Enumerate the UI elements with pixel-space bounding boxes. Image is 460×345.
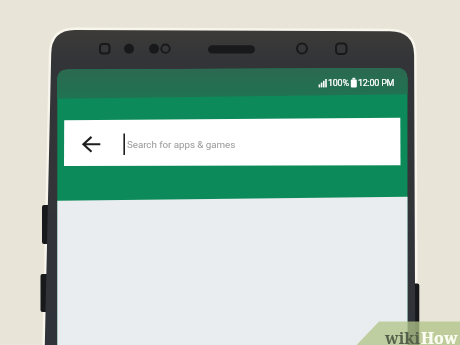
staticText: How bbox=[421, 327, 458, 345]
staticText: 12:00 PM bbox=[358, 78, 395, 89]
staticText: 100% bbox=[328, 78, 349, 89]
staticText: wiki bbox=[385, 327, 421, 345]
button[interactable] bbox=[110, 118, 400, 165]
button[interactable] bbox=[78, 131, 104, 157]
staticText: Search for apps & games bbox=[127, 139, 236, 150]
